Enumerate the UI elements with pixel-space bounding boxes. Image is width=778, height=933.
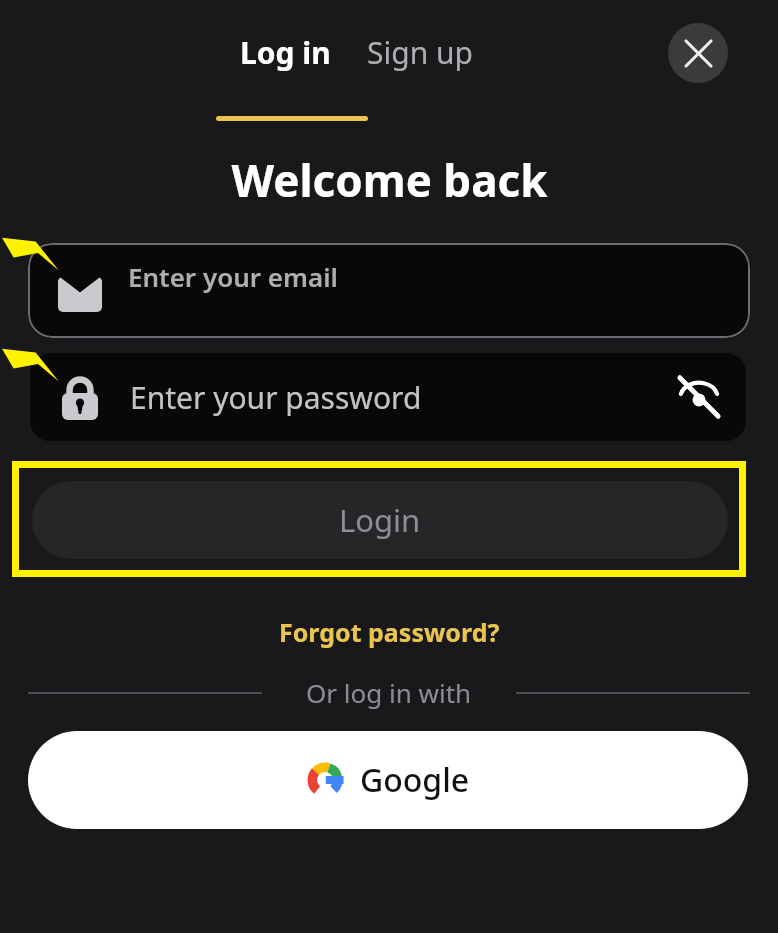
staticText: Enter your email	[128, 259, 338, 294]
button[interactable]: Login	[32, 481, 728, 559]
staticText: Log in	[240, 32, 331, 73]
button[interactable]: Show password	[670, 368, 728, 426]
staticText: Welcome back	[231, 150, 548, 210]
button[interactable]: Enter your password	[30, 353, 746, 441]
button[interactable]: Log in	[218, 26, 353, 79]
button[interactable]: Google	[28, 731, 748, 829]
staticText: Sign up	[367, 32, 473, 73]
staticText: Or log in with	[306, 675, 472, 710]
button[interactable]: Sign up	[353, 26, 487, 79]
staticText: Forgot password?	[279, 615, 500, 649]
button[interactable]: Close	[668, 23, 728, 83]
button[interactable]: Forgot password?	[269, 611, 510, 653]
staticText: Google	[360, 758, 470, 802]
staticText: Login	[339, 499, 421, 541]
staticText: Enter your password	[130, 377, 422, 418]
button[interactable]: Enter your email	[28, 243, 750, 338]
